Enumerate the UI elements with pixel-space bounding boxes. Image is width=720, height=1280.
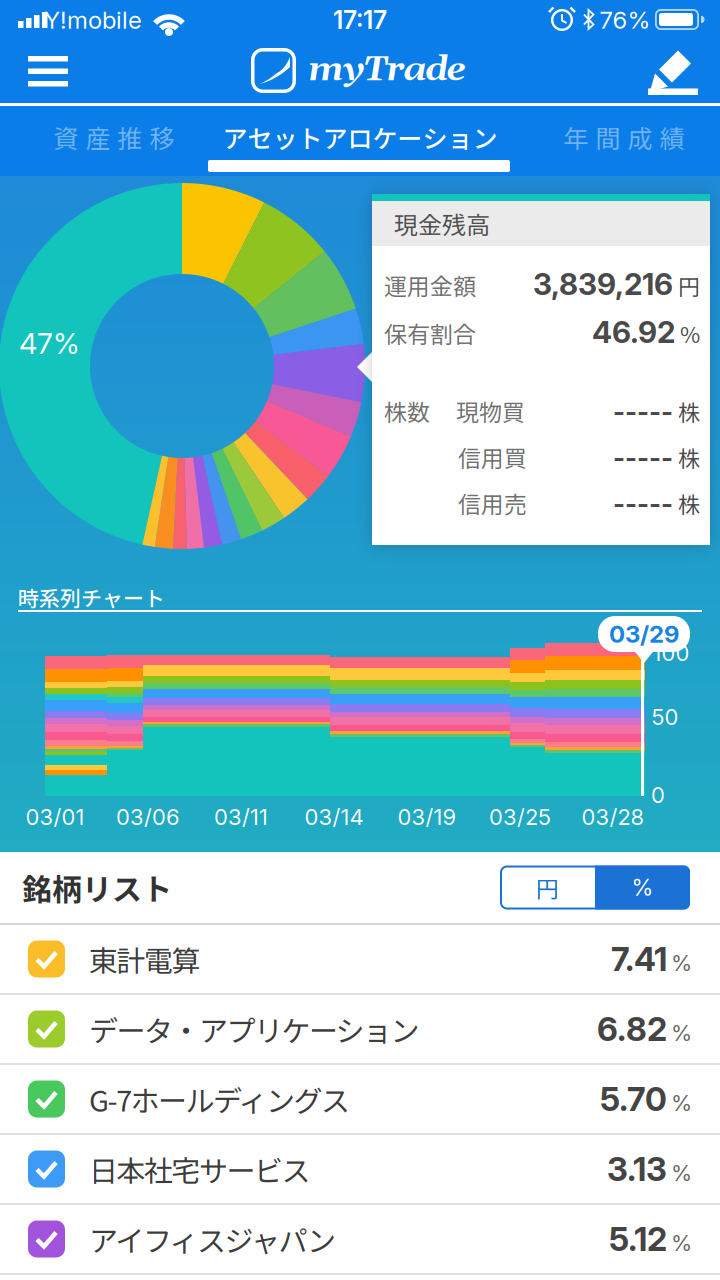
button[interactable]: 東計電算 <box>0 925 720 993</box>
staticText: 保有割合 <box>384 316 476 349</box>
staticText: 6.82 <box>597 1009 667 1049</box>
button[interactable]: 日本社宅サービス <box>0 1135 720 1203</box>
staticText: 円 <box>536 871 559 904</box>
staticText: 03/01 <box>25 804 84 830</box>
staticText: 銘柄リスト <box>22 866 172 909</box>
staticText: % <box>671 1160 692 1186</box>
staticText: % <box>671 1090 692 1116</box>
staticText: 03/11 <box>214 804 268 830</box>
staticText: 時系列チャート <box>18 582 165 612</box>
staticText: 年間成績 <box>563 119 684 155</box>
staticText: 03/19 <box>397 804 456 830</box>
staticText: ----- <box>613 396 673 427</box>
staticText: データ・アプリケーション <box>89 1008 419 1050</box>
staticText: 03/28 <box>581 804 644 830</box>
staticText: % <box>671 1230 692 1256</box>
staticText: % <box>671 950 692 976</box>
staticText: 3.13 <box>607 1149 667 1189</box>
staticText: 資産推移 <box>53 119 174 155</box>
staticText: 76% <box>599 5 650 34</box>
staticText: Y!mobile <box>44 5 142 34</box>
staticText: G-7ホールディングス <box>89 1078 350 1120</box>
button[interactable]: 年間成績 <box>524 109 720 165</box>
staticText: 46.92 <box>592 314 675 350</box>
staticText: 株 <box>673 395 700 427</box>
staticText: 100 <box>652 640 689 666</box>
button[interactable]: 円 <box>500 865 690 909</box>
staticText: 7.41 <box>611 939 667 979</box>
button[interactable]: G-7ホールディングス <box>0 1065 720 1133</box>
staticText: 円 <box>673 269 700 301</box>
staticText: 日本社宅サービス <box>89 1148 310 1190</box>
staticText: 3,839,216 <box>533 266 673 302</box>
staticText: % <box>631 874 653 901</box>
button[interactable]: アセットアロケーション <box>210 109 510 165</box>
staticText: アセットアロケーション <box>222 119 497 155</box>
staticText: 株 <box>673 441 700 473</box>
staticText: myTrade <box>308 48 465 92</box>
staticText: 47% <box>19 326 80 361</box>
staticText: 5.12 <box>609 1219 667 1259</box>
staticText: 50 <box>651 704 678 730</box>
staticText: 03/14 <box>304 804 363 830</box>
staticText: 03/25 <box>489 804 551 830</box>
staticText: 現金残高 <box>394 206 490 241</box>
staticText: 0 <box>651 782 665 808</box>
staticText: 現物買 <box>456 394 525 428</box>
staticText: 17:17 <box>333 5 387 35</box>
staticText: % <box>671 1020 692 1046</box>
staticText: % <box>675 317 700 349</box>
button[interactable]: データ・アプリケーション <box>0 995 720 1063</box>
button[interactable] <box>0 0 100 103</box>
staticText: 運用金額 <box>384 268 476 301</box>
staticText: アイフィスジャパン <box>89 1218 336 1260</box>
staticText: 信用買 <box>458 440 527 474</box>
staticText: 5.70 <box>600 1079 667 1119</box>
staticText: 株数 <box>384 394 430 428</box>
staticText: 03/29 <box>609 619 679 648</box>
button[interactable]: 資産推移 <box>14 109 214 165</box>
staticText: 東計電算 <box>89 938 200 980</box>
button[interactable]: アイフィスジャパン <box>0 1205 720 1273</box>
staticText: 03/06 <box>116 804 180 830</box>
staticText: ----- <box>613 488 673 519</box>
staticText: 信用売 <box>458 486 527 520</box>
staticText: ----- <box>613 442 673 473</box>
staticText: 株 <box>673 487 700 519</box>
button[interactable] <box>610 0 720 102</box>
